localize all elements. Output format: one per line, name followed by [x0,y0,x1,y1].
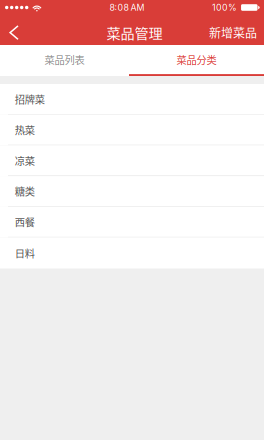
staticText: 8:08 AM [109,2,144,13]
staticText: 日料 [15,246,35,260]
button[interactable]: 菜品列表 [0,45,129,76]
button[interactable]: 菜品分类 [129,45,264,76]
staticText: 糖类 [15,184,35,199]
staticText: 菜品列表 [44,52,84,67]
staticText: 菜品管理 [106,22,162,43]
staticText: 招牌菜 [15,92,45,106]
staticText: 菜品分类 [176,52,216,67]
button[interactable]: 热菜 [0,115,264,145]
button[interactable]: 凉菜 [0,145,264,176]
staticText: 新增菜品 [209,24,257,41]
staticText: 凉菜 [15,153,35,168]
staticText: 100% [212,2,237,13]
button[interactable]: 日料 [0,237,264,268]
button[interactable]: 西餐 [0,207,264,237]
staticText: 热菜 [15,122,35,137]
button[interactable]: 新增菜品 [209,20,264,45]
button[interactable]: 招牌菜 [0,84,264,115]
button[interactable]: 糖类 [0,176,264,207]
staticText: 西餐 [15,214,35,229]
button[interactable]: Back [0,20,35,45]
